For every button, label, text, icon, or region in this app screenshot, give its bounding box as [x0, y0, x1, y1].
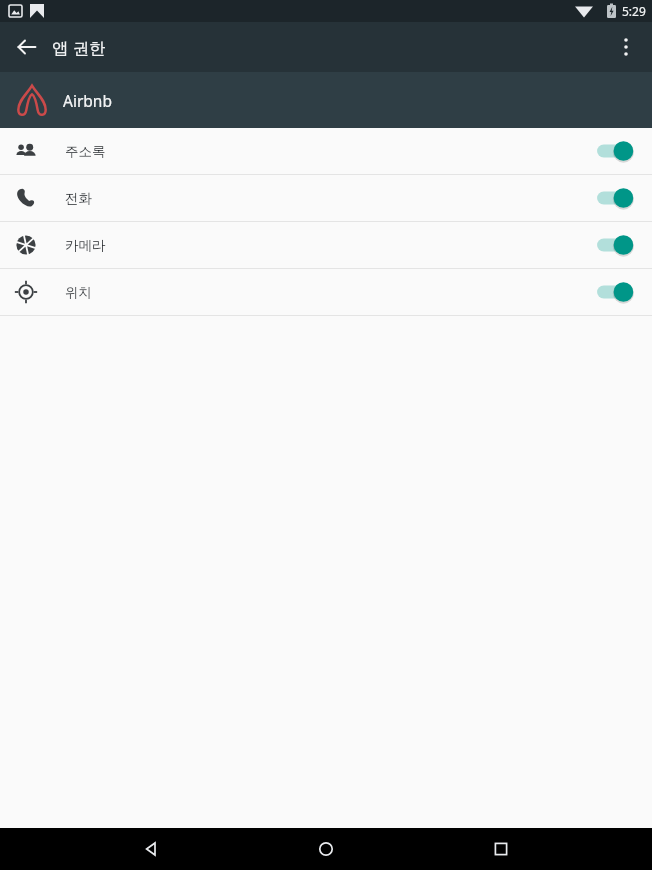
button[interactable]: Home: [302, 828, 350, 870]
button[interactable]: Camera permission: [592, 229, 638, 261]
button[interactable]: Contacts permission: [592, 135, 638, 167]
button[interactable]: Back: [127, 828, 175, 870]
staticText: 앱 권한: [52, 36, 106, 59]
button[interactable]: 위치: [0, 269, 652, 315]
button[interactable]: 주소록: [0, 128, 652, 174]
button[interactable]: Back: [11, 31, 43, 63]
button[interactable]: 카메라: [0, 222, 652, 268]
button[interactable]: Airbnb: [0, 72, 652, 128]
button[interactable]: Recent apps: [477, 828, 525, 870]
staticText: 위치: [65, 284, 92, 301]
button[interactable]: Location permission: [592, 276, 638, 308]
staticText: 5:29: [622, 3, 646, 19]
staticText: 카메라: [65, 237, 106, 254]
staticText: 전화: [65, 190, 92, 207]
staticText: Airbnb: [63, 90, 112, 111]
staticText: 주소록: [65, 143, 106, 160]
button[interactable]: More options: [610, 31, 642, 63]
button[interactable]: Phone permission: [592, 182, 638, 214]
button[interactable]: 전화: [0, 175, 652, 221]
